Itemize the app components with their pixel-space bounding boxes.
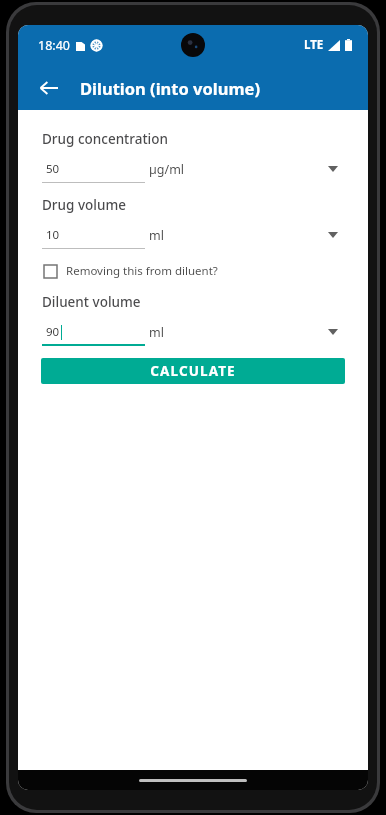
- button[interactable]: CALCULATE: [41, 358, 345, 384]
- staticText: 10: [46, 227, 60, 243]
- staticText: Drug concentration: [42, 130, 168, 148]
- staticText: Dilution (into volume): [80, 77, 260, 99]
- staticText: 18:40: [38, 37, 70, 54]
- button[interactable]: 10: [42, 221, 145, 249]
- staticText: Drug volume: [42, 196, 126, 214]
- button[interactable]: 90: [42, 318, 145, 346]
- staticText: ml: [149, 227, 164, 244]
- staticText: 90: [46, 324, 60, 340]
- staticText: CALCULATE: [150, 362, 236, 380]
- button[interactable]: Select unit: [320, 319, 346, 345]
- button[interactable]: Select unit: [320, 156, 346, 182]
- staticText: Diluent volume: [42, 293, 141, 311]
- button[interactable]: 50: [42, 155, 145, 183]
- button[interactable]: Removing this from diluent?: [44, 258, 346, 284]
- staticText: LTE: [304, 37, 324, 53]
- staticText: µg/ml: [149, 161, 185, 178]
- button[interactable]: Back: [31, 70, 67, 106]
- staticText: 50: [46, 161, 60, 177]
- button[interactable]: Select unit: [320, 222, 346, 248]
- staticText: Removing this from diluent?: [66, 263, 218, 279]
- staticText: ml: [149, 324, 164, 341]
